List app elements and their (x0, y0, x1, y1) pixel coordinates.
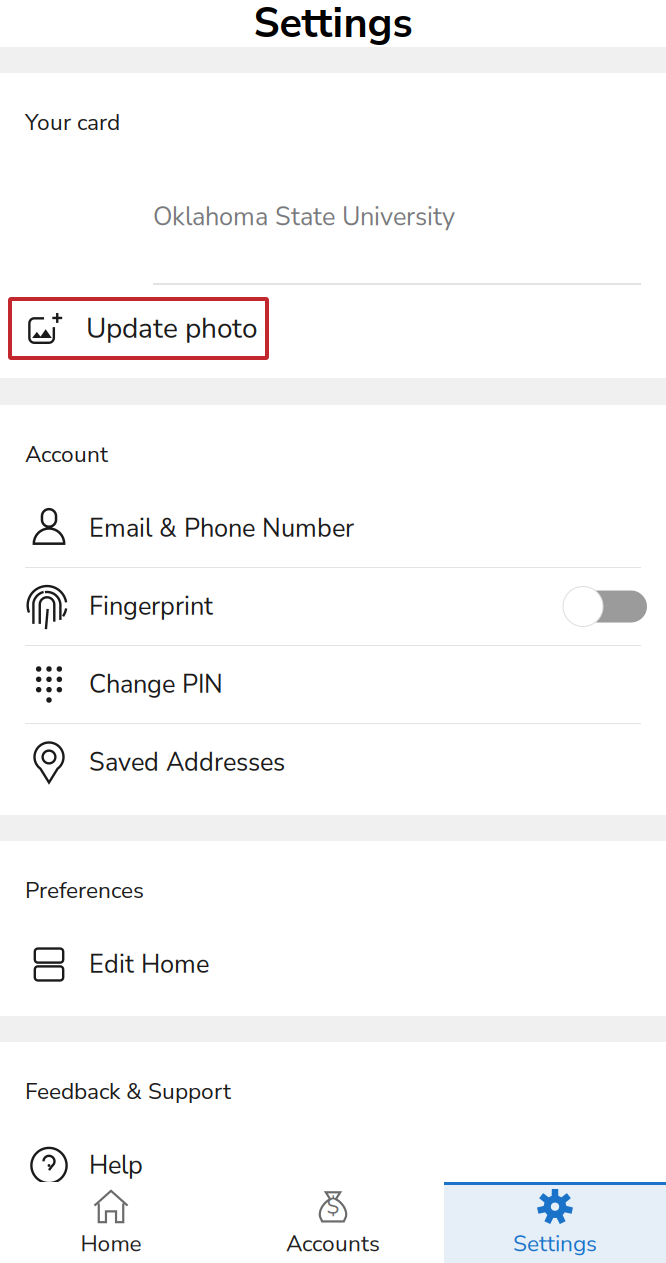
button[interactable]: $ (222, 1182, 444, 1263)
staticText: Account (25, 439, 108, 470)
staticText: Settings (253, 0, 412, 52)
button[interactable]: Edit Home (0, 926, 666, 1003)
staticText: Fingerprint (89, 589, 213, 624)
staticText: Home (80, 1228, 141, 1259)
staticText: Your card (25, 107, 120, 138)
button[interactable]: Fingerprint (0, 568, 666, 645)
staticText: Change PIN (89, 667, 223, 702)
staticText: Saved Addresses (89, 745, 285, 780)
staticText: Preferences (25, 875, 144, 906)
staticText: Edit Home (89, 947, 209, 982)
staticText: $ (326, 1192, 339, 1221)
button[interactable]: Home (0, 1182, 222, 1263)
staticText: Update photo (86, 309, 258, 348)
staticText: Oklahoma State University (153, 200, 455, 234)
button[interactable]: Settings (444, 1182, 666, 1263)
staticText: Help (89, 1148, 143, 1183)
button[interactable]: Help (0, 1127, 666, 1204)
staticText: Settings (513, 1228, 597, 1259)
staticText: Email & Phone Number (89, 511, 354, 546)
staticText: Accounts (286, 1228, 380, 1259)
staticText: Feedback & Support (25, 1076, 231, 1107)
button[interactable]: Email & Phone Number (0, 490, 666, 567)
button[interactable]: Update photo (10, 299, 267, 358)
button[interactable]: Saved Addresses (0, 724, 666, 801)
button[interactable]: Change PIN (0, 646, 666, 723)
